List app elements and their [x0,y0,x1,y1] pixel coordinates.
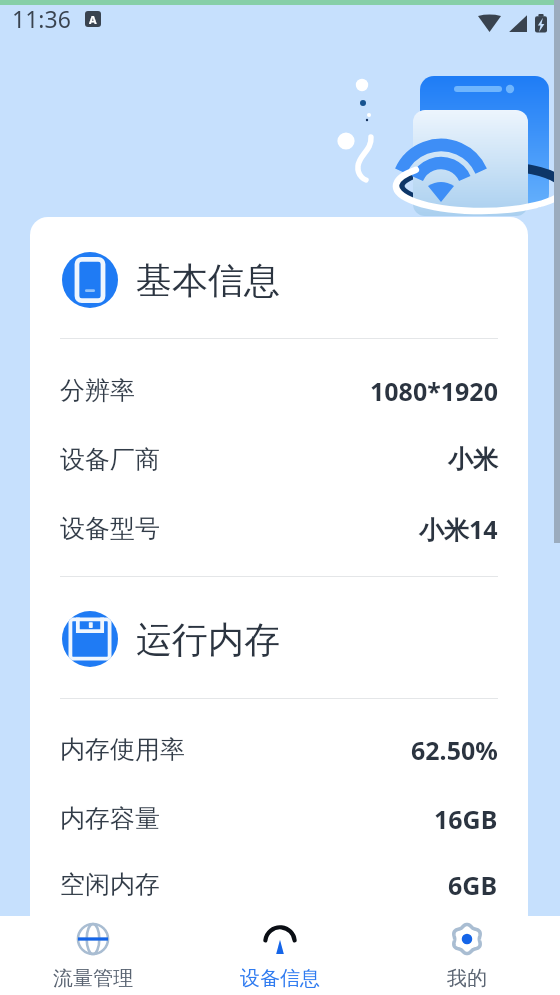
staticText: 6GB [448,868,498,902]
staticText: 内存容量 [60,803,160,834]
button[interactable]: 空闲内存 [30,853,528,916]
button[interactable]: 设备厂商 [30,425,528,494]
button[interactable]: 我的 [373,916,560,995]
button[interactable]: 设备型号 [30,494,528,563]
staticText: 小米 [448,444,498,475]
button[interactable]: 流量管理 [0,916,186,995]
staticText: 基本信息 [136,258,280,303]
button[interactable]: 内存容量 [30,784,528,853]
button[interactable]: 设备信息 [186,916,373,995]
staticText: 1080*1920 [370,374,498,408]
staticText: 16GB [434,802,498,836]
staticText: 设备信息 [240,966,320,991]
staticText: 设备型号 [60,513,160,544]
staticText: 我的 [447,966,487,991]
button[interactable]: 内存使用率 [30,715,528,784]
button[interactable]: 分辨率 [30,356,528,425]
staticText: 分辨率 [60,375,135,406]
staticText: A [89,12,97,27]
staticText: 11:36 [12,3,71,34]
staticText: 空闲内存 [60,869,160,900]
staticText: 内存使用率 [60,734,185,765]
staticText: 运行内存 [136,617,280,662]
staticText: 小米14 [419,512,498,546]
staticText: 62.50% [411,733,498,767]
staticText: 设备厂商 [60,444,160,475]
staticText: 流量管理 [53,966,133,991]
